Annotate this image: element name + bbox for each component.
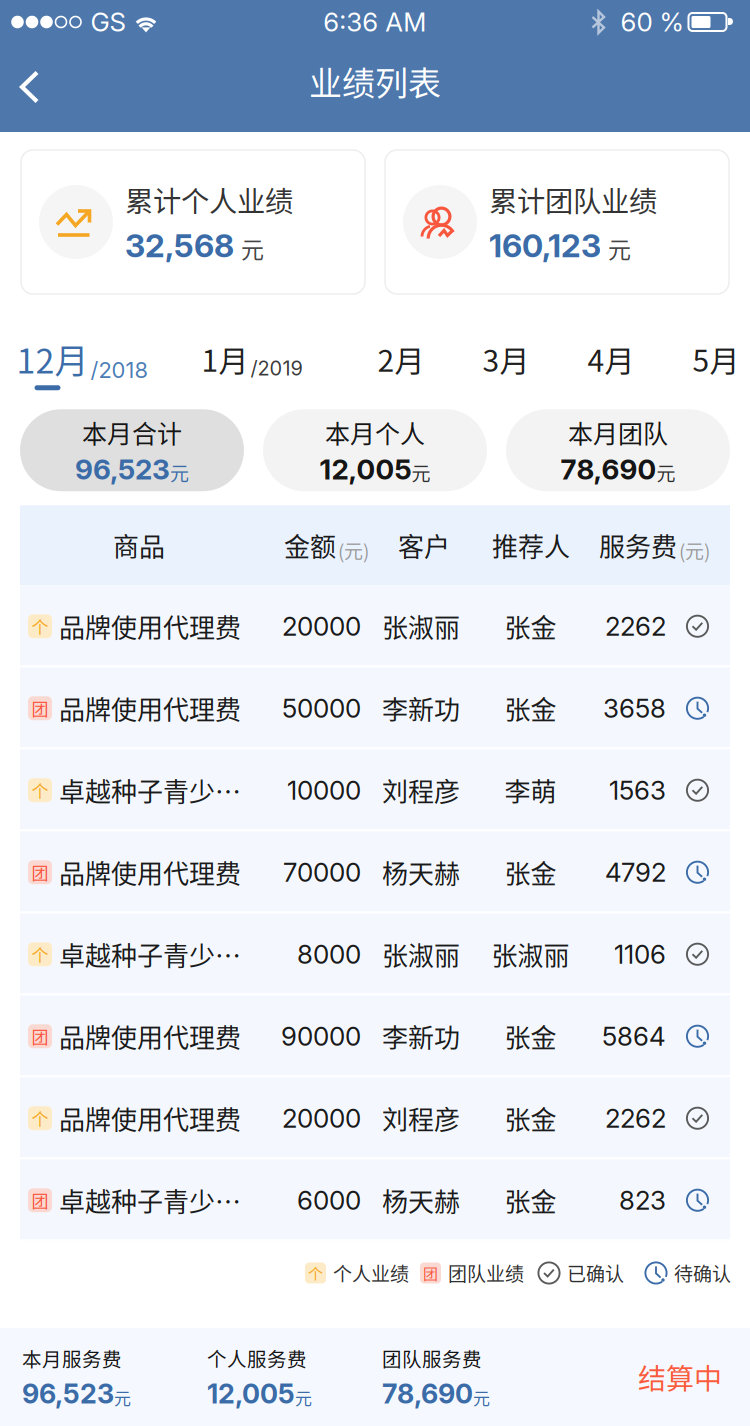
staticText: 杨天赫 — [382, 853, 460, 891]
staticText: 团 — [423, 1262, 438, 1284]
staticText: 品牌使用代理费 — [59, 1099, 241, 1137]
staticText: 卓越种子青少… — [59, 771, 241, 809]
staticText: 个 — [31, 614, 48, 638]
button[interactable]: 待确认 — [645, 1259, 731, 1287]
staticText: 服务费 — [599, 526, 677, 564]
staticText: 20000 — [282, 1102, 361, 1134]
staticText: 品牌使用代理费 — [59, 607, 241, 645]
button[interactable]: 2月 — [377, 333, 482, 391]
staticText: 元 — [295, 1385, 312, 1410]
button[interactable]: 本月个人 — [263, 409, 487, 491]
staticText: 5月 — [692, 337, 739, 380]
staticText: 元 — [608, 231, 631, 265]
button[interactable]: 累计团队业绩 — [385, 150, 729, 294]
staticText: 5864 — [602, 1020, 666, 1052]
staticText: 3月 — [482, 337, 529, 380]
staticText: 2262 — [605, 610, 666, 642]
staticText: 个人业绩 — [333, 1259, 409, 1287]
staticText: 客户 — [398, 526, 450, 564]
staticText: 团 — [31, 696, 48, 720]
staticText: 70000 — [283, 856, 361, 888]
staticText: 50000 — [282, 692, 361, 724]
button[interactable]: 个 — [20, 913, 730, 995]
button[interactable]: 返回 — [0, 51, 67, 125]
staticText: 卓越种子青少… — [59, 1181, 241, 1219]
button[interactable]: 本月合计 — [20, 409, 244, 491]
staticText: 刘程彦 — [382, 771, 460, 809]
button[interactable]: 团 — [20, 995, 730, 1077]
staticText: 累计个人业绩 — [125, 179, 293, 220]
staticText: 李新功 — [382, 689, 460, 727]
staticText: 待确认 — [674, 1259, 731, 1287]
button[interactable]: 3月 — [482, 333, 587, 391]
staticText: 个人服务费 — [207, 1344, 307, 1372]
button[interactable]: 已确认 — [538, 1259, 624, 1287]
staticText: (元) — [338, 536, 369, 564]
staticText: 6:36 AM — [323, 6, 426, 38]
staticText: 卓越种子青少… — [59, 935, 241, 973]
staticText: 10000 — [287, 774, 361, 806]
staticText: 2月 — [377, 337, 424, 380]
button[interactable]: 5月 — [692, 333, 750, 391]
staticText: 品牌使用代理费 — [59, 1017, 241, 1055]
staticText: 3658 — [603, 692, 666, 724]
staticText: 李新功 — [382, 1017, 460, 1055]
staticText: 96,523 — [75, 452, 170, 486]
staticText: 张淑丽 — [382, 935, 460, 973]
staticText: 李萌 — [504, 771, 556, 809]
button[interactable]: 累计个人业绩 — [21, 150, 365, 294]
button[interactable]: 个 — [20, 749, 730, 831]
staticText: 元 — [170, 459, 189, 486]
staticText: 团队服务费 — [382, 1344, 482, 1372]
button[interactable]: 1月 — [201, 333, 377, 391]
button[interactable]: 结算中 — [638, 1337, 750, 1417]
button[interactable]: 团 — [20, 831, 730, 913]
staticText: 张淑丽 — [491, 935, 569, 973]
staticText: 金额 — [284, 526, 336, 564]
staticText: 张金 — [504, 1017, 556, 1055]
staticText: 本月服务费 — [22, 1344, 122, 1372]
staticText: 张金 — [504, 853, 556, 891]
button[interactable]: 个 — [20, 585, 730, 667]
staticText: 32,568 — [125, 226, 234, 265]
staticText: 6000 — [297, 1184, 361, 1216]
staticText: 个 — [31, 1106, 48, 1130]
staticText: 元 — [114, 1385, 131, 1410]
staticText: /2019 — [250, 356, 302, 380]
staticText: 团队业绩 — [448, 1259, 524, 1287]
button[interactable]: 团 — [420, 1259, 524, 1287]
staticText: 元 — [241, 231, 264, 265]
staticText: 4月 — [587, 337, 634, 380]
staticText: GS — [90, 6, 125, 38]
staticText: 1106 — [614, 938, 666, 970]
button[interactable]: 本月团队 — [506, 409, 730, 491]
button[interactable]: 个 — [20, 1077, 730, 1159]
staticText: 个 — [31, 778, 48, 802]
staticText: 个 — [31, 942, 48, 966]
staticText: 4792 — [605, 856, 666, 888]
button[interactable]: 12月 — [16, 330, 201, 394]
staticText: 元 — [473, 1385, 490, 1410]
staticText: 78,690 — [560, 452, 656, 486]
staticText: 1月 — [201, 337, 248, 380]
staticText: 团 — [31, 1188, 48, 1212]
staticText: 推荐人 — [492, 526, 570, 564]
staticText: 张金 — [504, 1099, 556, 1137]
staticText: 本月团队 — [568, 414, 668, 450]
staticText: 本月合计 — [82, 414, 182, 450]
staticText: 商品 — [113, 526, 165, 564]
staticText: 结算中 — [638, 1357, 722, 1397]
button[interactable]: 个 — [305, 1259, 409, 1287]
staticText: 823 — [619, 1184, 666, 1216]
staticText: 品牌使用代理费 — [59, 853, 241, 891]
staticText: 12,005 — [319, 452, 411, 486]
staticText: 8000 — [297, 938, 361, 970]
button[interactable]: 4月 — [587, 333, 692, 391]
button[interactable]: 团 — [20, 667, 730, 749]
button[interactable]: 团 — [20, 1159, 730, 1241]
staticText: 12月 — [16, 334, 88, 383]
staticText: 个 — [308, 1262, 323, 1284]
staticText: 20000 — [282, 610, 361, 642]
staticText: 1563 — [609, 774, 666, 806]
staticText: 90000 — [281, 1020, 361, 1052]
